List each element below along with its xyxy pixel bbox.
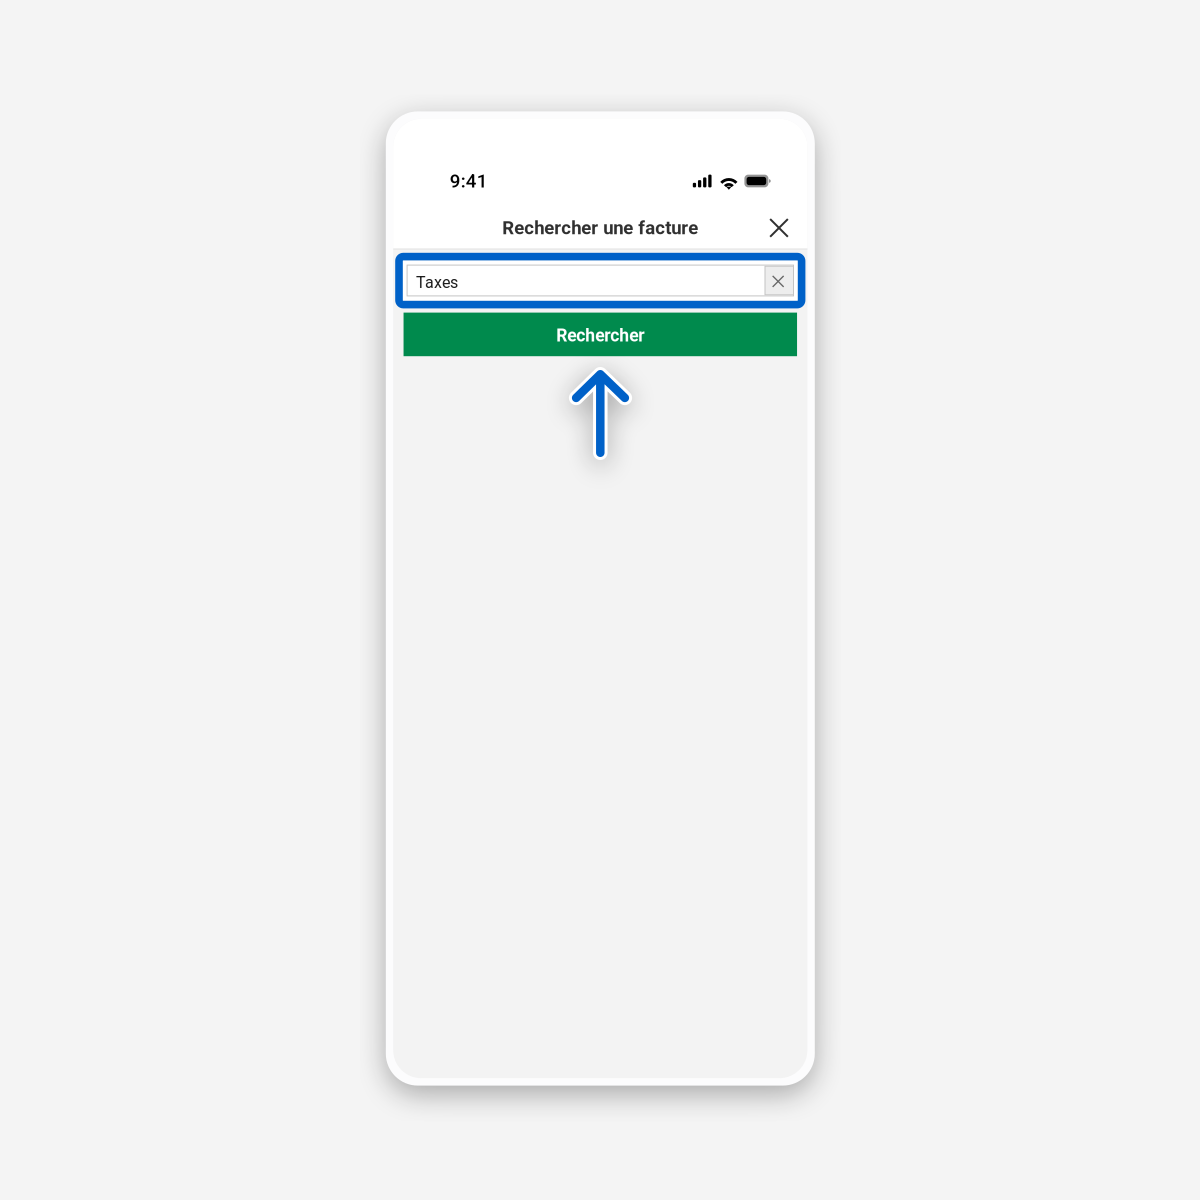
button[interactable]: Fermer [758,207,800,249]
staticText: 9:41 [450,170,488,192]
staticText: Taxes [416,273,458,292]
staticText: Rechercher [556,325,644,346]
button[interactable]: Rechercher [403,313,797,356]
staticText: Rechercher une facture [502,217,698,239]
button[interactable]: Effacer le texte [765,266,793,295]
